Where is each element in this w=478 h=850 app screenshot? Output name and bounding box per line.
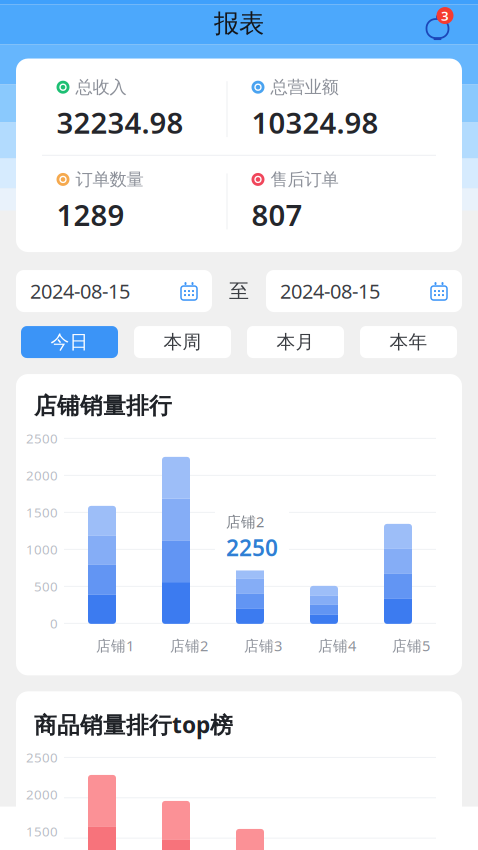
staticText: 今日 [50, 331, 88, 353]
staticText: 至 [229, 279, 249, 303]
button[interactable]: 本年 [360, 326, 457, 358]
staticText: 店铺1 [96, 636, 134, 655]
staticText: 0 [50, 614, 58, 632]
button[interactable]: 2024-08-15 [16, 270, 212, 312]
button[interactable]: 通知 [418, 1, 462, 45]
staticText: 2000 [26, 786, 58, 803]
staticText: 500 [34, 577, 58, 595]
staticText: 报表 [214, 8, 264, 39]
staticText: 本年 [389, 331, 427, 353]
staticText: 店铺销量排行 [34, 392, 172, 420]
staticText: 1500 [26, 503, 58, 521]
staticText: 1500 [26, 823, 58, 840]
staticText: 售后订单 [270, 169, 338, 190]
staticText: 32234.98 [56, 103, 183, 142]
staticText: 本月 [276, 331, 314, 353]
button[interactable]: 今日 [21, 326, 118, 358]
staticText: 总营业额 [270, 76, 338, 98]
staticText: 订单数量 [75, 169, 143, 190]
staticText: 本周 [163, 331, 201, 353]
staticText: 店铺2 [170, 636, 208, 655]
staticText: 2500 [26, 429, 58, 447]
staticText: 店铺4 [318, 636, 356, 655]
staticText: 2500 [26, 749, 58, 766]
staticText: 商品销量排行top榜 [34, 709, 233, 739]
staticText: 总收入 [75, 76, 126, 98]
staticText: 店铺5 [392, 636, 430, 655]
staticText: 2024-08-15 [30, 278, 130, 304]
staticText: 3 [441, 7, 449, 24]
staticText: 2024-08-15 [280, 278, 380, 304]
staticText: 2000 [26, 466, 58, 484]
button[interactable]: 2024-08-15 [266, 270, 462, 312]
staticText: 1000 [26, 540, 58, 558]
staticText: 807 [251, 195, 302, 234]
staticText: 1289 [56, 195, 124, 234]
staticText: 店铺3 [244, 636, 282, 655]
button[interactable]: 本月 [247, 326, 344, 358]
staticText: 10324.98 [251, 103, 378, 142]
staticText: 2250 [226, 532, 278, 562]
staticText: 店铺2 [226, 512, 264, 531]
button[interactable]: 本周 [134, 326, 231, 358]
